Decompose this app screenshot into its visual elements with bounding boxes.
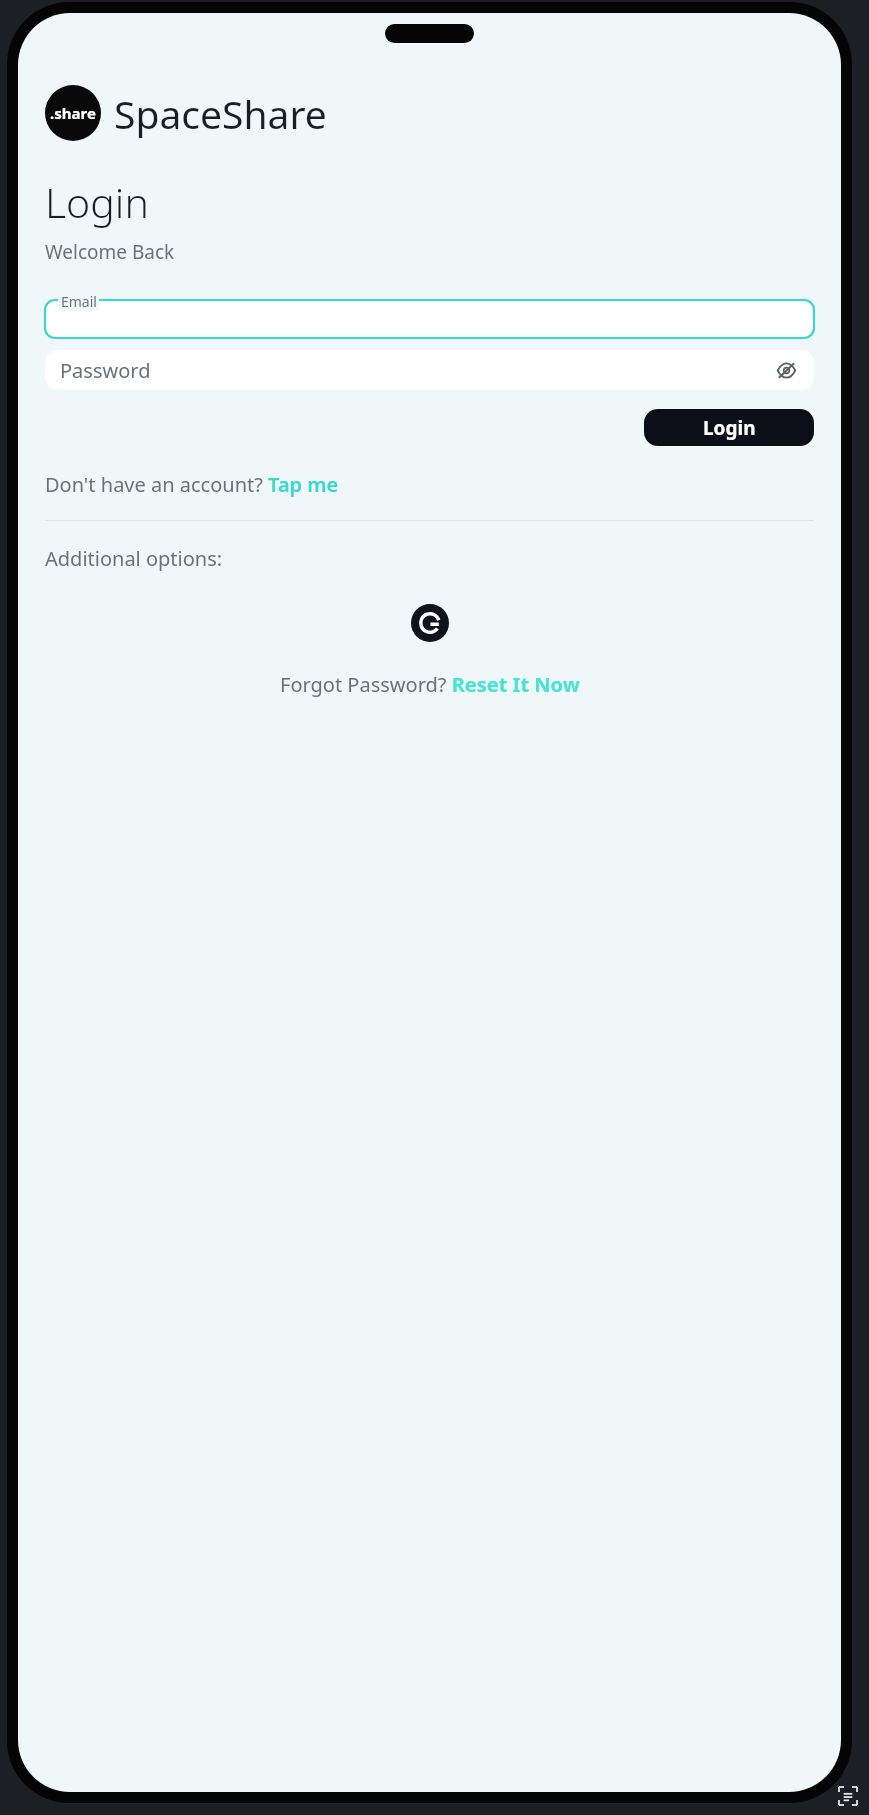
button[interactable]: Email (45, 292, 814, 338)
staticText: Password (60, 357, 773, 384)
staticText: SpaceShare (114, 87, 327, 140)
staticText: Additional options: (45, 545, 223, 572)
staticText: Don't have an account? Tap me (45, 471, 339, 498)
button[interactable]: Don't have an account? Tap me (45, 471, 339, 498)
button[interactable]: Login (644, 409, 814, 446)
button[interactable]: Sign in with Google (411, 604, 449, 642)
staticText: Login (45, 174, 149, 230)
staticText: Forgot Password? Reset It Now (280, 671, 580, 698)
staticText: Email (61, 292, 97, 311)
staticText: Welcome Back (45, 239, 175, 265)
button[interactable]: Show password (773, 357, 799, 383)
button[interactable]: Forgot Password? Reset It Now (280, 671, 580, 698)
button[interactable]: Select text (835, 1783, 861, 1809)
button[interactable]: Password (45, 350, 814, 390)
staticText: Login (703, 415, 756, 441)
staticText: .share (50, 103, 96, 123)
